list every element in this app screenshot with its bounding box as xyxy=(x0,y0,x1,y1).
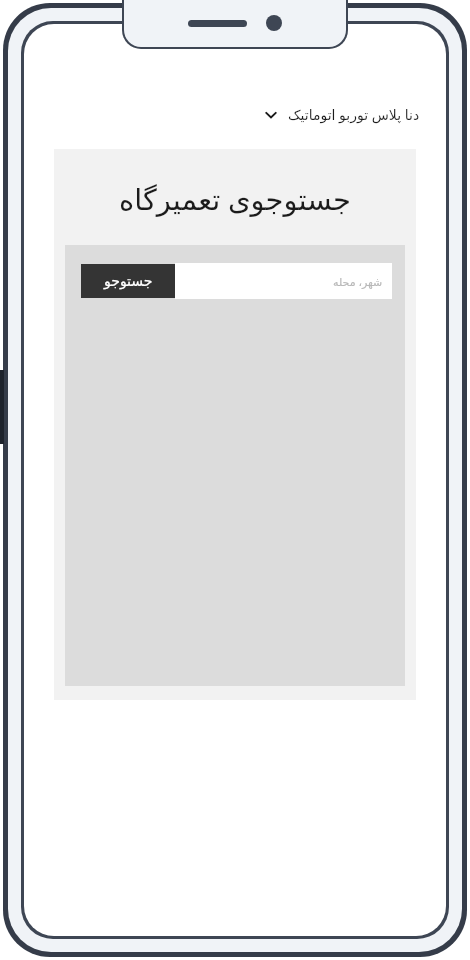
staticText: دنا پلاس توربو اتوماتیک xyxy=(288,105,420,124)
staticText: جستوجو xyxy=(104,273,153,289)
button[interactable]: جستوجو xyxy=(81,264,175,298)
staticText: جستوجوی تعمیرگاه xyxy=(54,179,416,218)
staticText: شهر، محله xyxy=(333,274,383,289)
button[interactable]: شهر، محله xyxy=(175,263,392,299)
other: Expand car model selector xyxy=(264,108,278,122)
button[interactable]: Expand car model selector xyxy=(260,100,424,129)
